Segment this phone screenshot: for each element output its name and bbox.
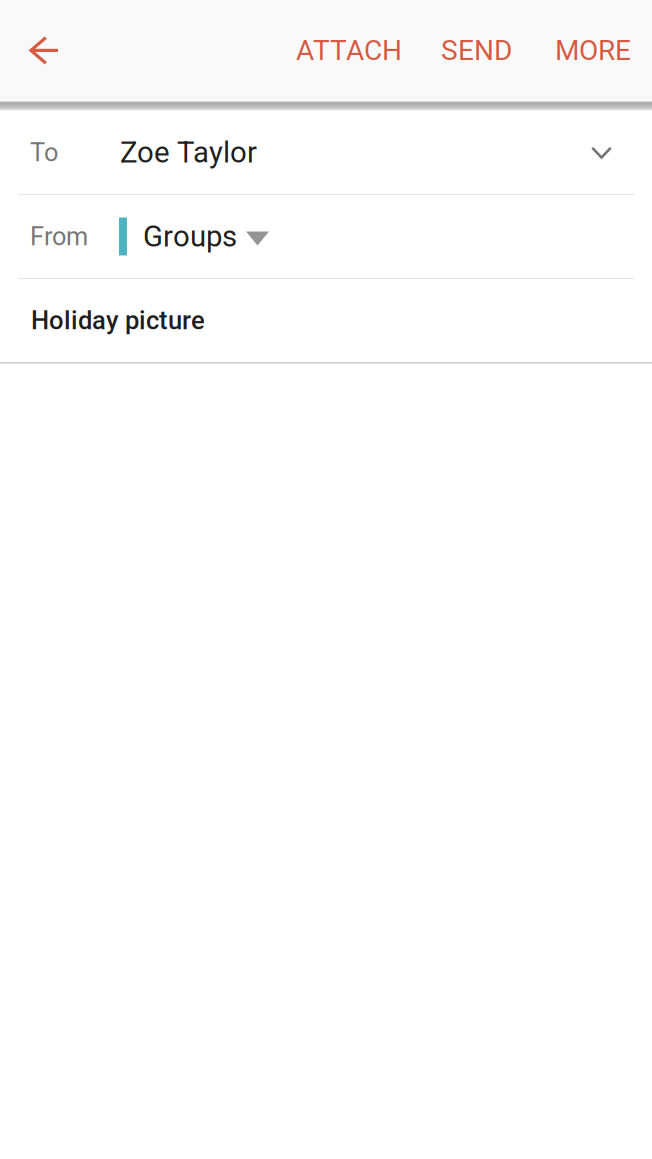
staticText: Holiday picture [31,305,205,335]
staticText: MORE [555,34,631,67]
staticText: To [30,138,58,167]
button[interactable]: Back [0,0,100,101]
staticText: Groups [143,219,237,254]
button[interactable]: Holiday picture [0,279,652,364]
button[interactable]: MORE [533,0,652,101]
staticText: Zoe Taylor [120,135,257,170]
button[interactable]: SEND [418,0,533,101]
button[interactable]: To [0,111,652,195]
staticText: From [30,222,88,251]
staticText: ATTACH [296,34,402,67]
button[interactable]: ATTACH [267,0,418,101]
button[interactable]: From [0,195,652,279]
staticText: SEND [441,34,512,67]
